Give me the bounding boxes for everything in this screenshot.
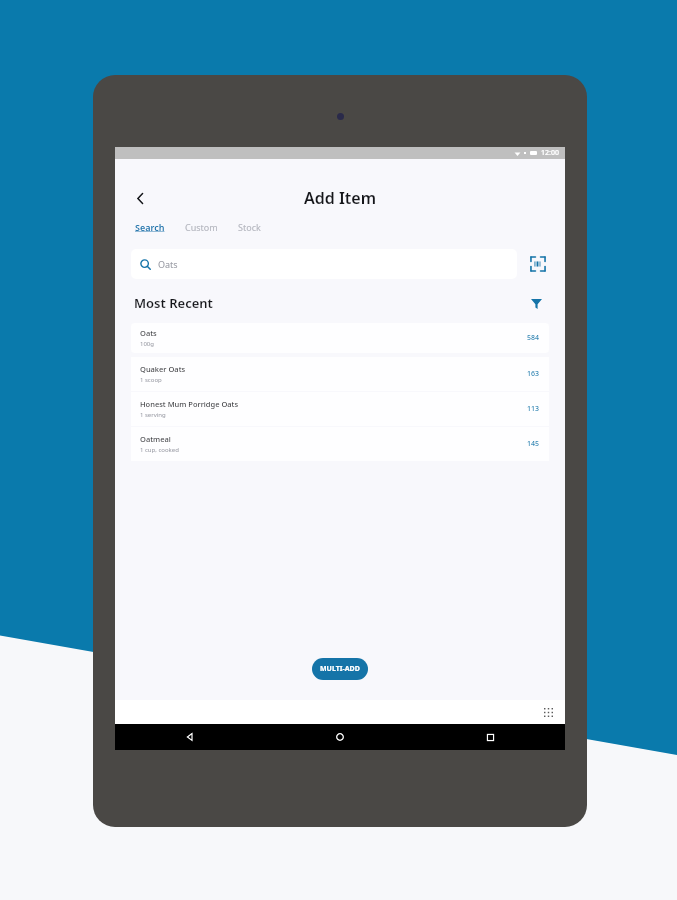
staticText: Oats bbox=[140, 328, 157, 338]
staticText: 1 scoop bbox=[140, 376, 162, 384]
button[interactable]: Recent apps bbox=[415, 724, 565, 750]
button[interactable]: Scan barcode bbox=[527, 253, 549, 275]
staticText: Custom bbox=[185, 221, 218, 233]
button[interactable]: Stock bbox=[237, 219, 262, 235]
staticText: Oatmeal bbox=[140, 434, 171, 444]
staticText: Quaker Oats bbox=[140, 364, 186, 374]
staticText: 12:00 bbox=[541, 148, 559, 158]
staticText: 1 cup, cooked bbox=[140, 446, 179, 454]
staticText: Honest Mum Porridge Oats bbox=[140, 399, 239, 409]
button[interactable]: Oats bbox=[131, 249, 517, 279]
staticText: MULTI-ADD bbox=[320, 664, 360, 674]
staticText: Search bbox=[135, 221, 165, 233]
button[interactable]: Custom bbox=[184, 219, 219, 235]
staticText: 100g bbox=[140, 340, 154, 348]
button[interactable]: Quaker Oats bbox=[131, 357, 549, 391]
button[interactable]: All apps bbox=[541, 705, 555, 719]
button[interactable]: Back bbox=[125, 183, 155, 213]
staticText: 584 bbox=[527, 333, 540, 343]
staticText: 163 bbox=[527, 369, 540, 379]
staticText: Most Recent bbox=[134, 294, 213, 312]
button[interactable]: Home bbox=[265, 724, 415, 750]
staticText: 1 serving bbox=[140, 411, 166, 419]
button[interactable]: Search bbox=[134, 219, 166, 235]
staticText: Stock bbox=[238, 221, 261, 233]
button[interactable]: Honest Mum Porridge Oats bbox=[131, 392, 549, 426]
button[interactable]: Oats bbox=[131, 323, 549, 353]
staticText: 145 bbox=[527, 439, 540, 449]
button[interactable]: Oatmeal bbox=[131, 427, 549, 461]
button[interactable]: Filter bbox=[526, 293, 546, 313]
staticText: Add Item bbox=[304, 187, 377, 209]
staticText: Oats bbox=[158, 258, 178, 270]
staticText: 113 bbox=[527, 404, 540, 414]
button[interactable]: MULTI-ADD bbox=[312, 658, 368, 680]
button[interactable]: Back bbox=[115, 724, 265, 750]
